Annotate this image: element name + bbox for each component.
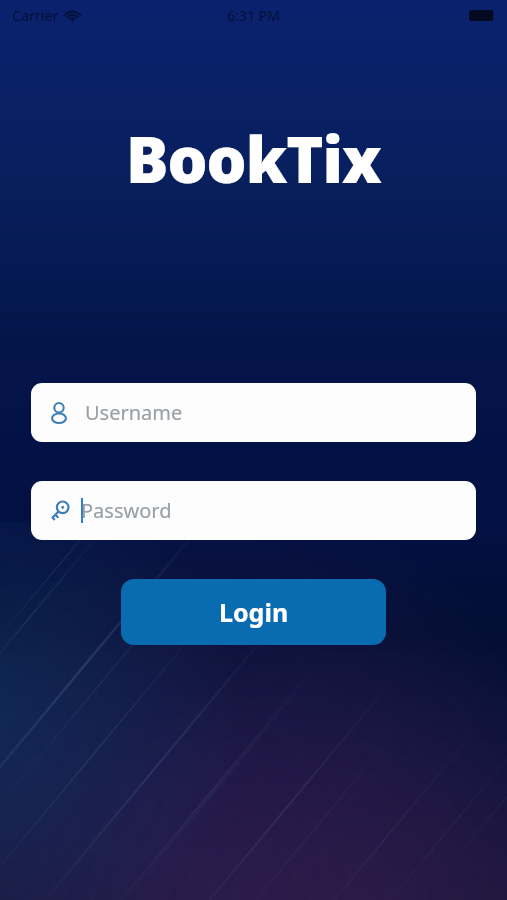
staticText: Username <box>85 399 183 426</box>
button[interactable]: Username <box>31 383 476 442</box>
staticText: Login <box>219 595 289 629</box>
button[interactable]: Login <box>121 579 386 645</box>
staticText: Carrier <box>12 6 59 25</box>
staticText: BookTix <box>126 116 381 202</box>
button[interactable]: Password <box>31 481 476 540</box>
staticText: 6:31 PM <box>227 6 280 25</box>
staticText: Password <box>81 497 172 524</box>
